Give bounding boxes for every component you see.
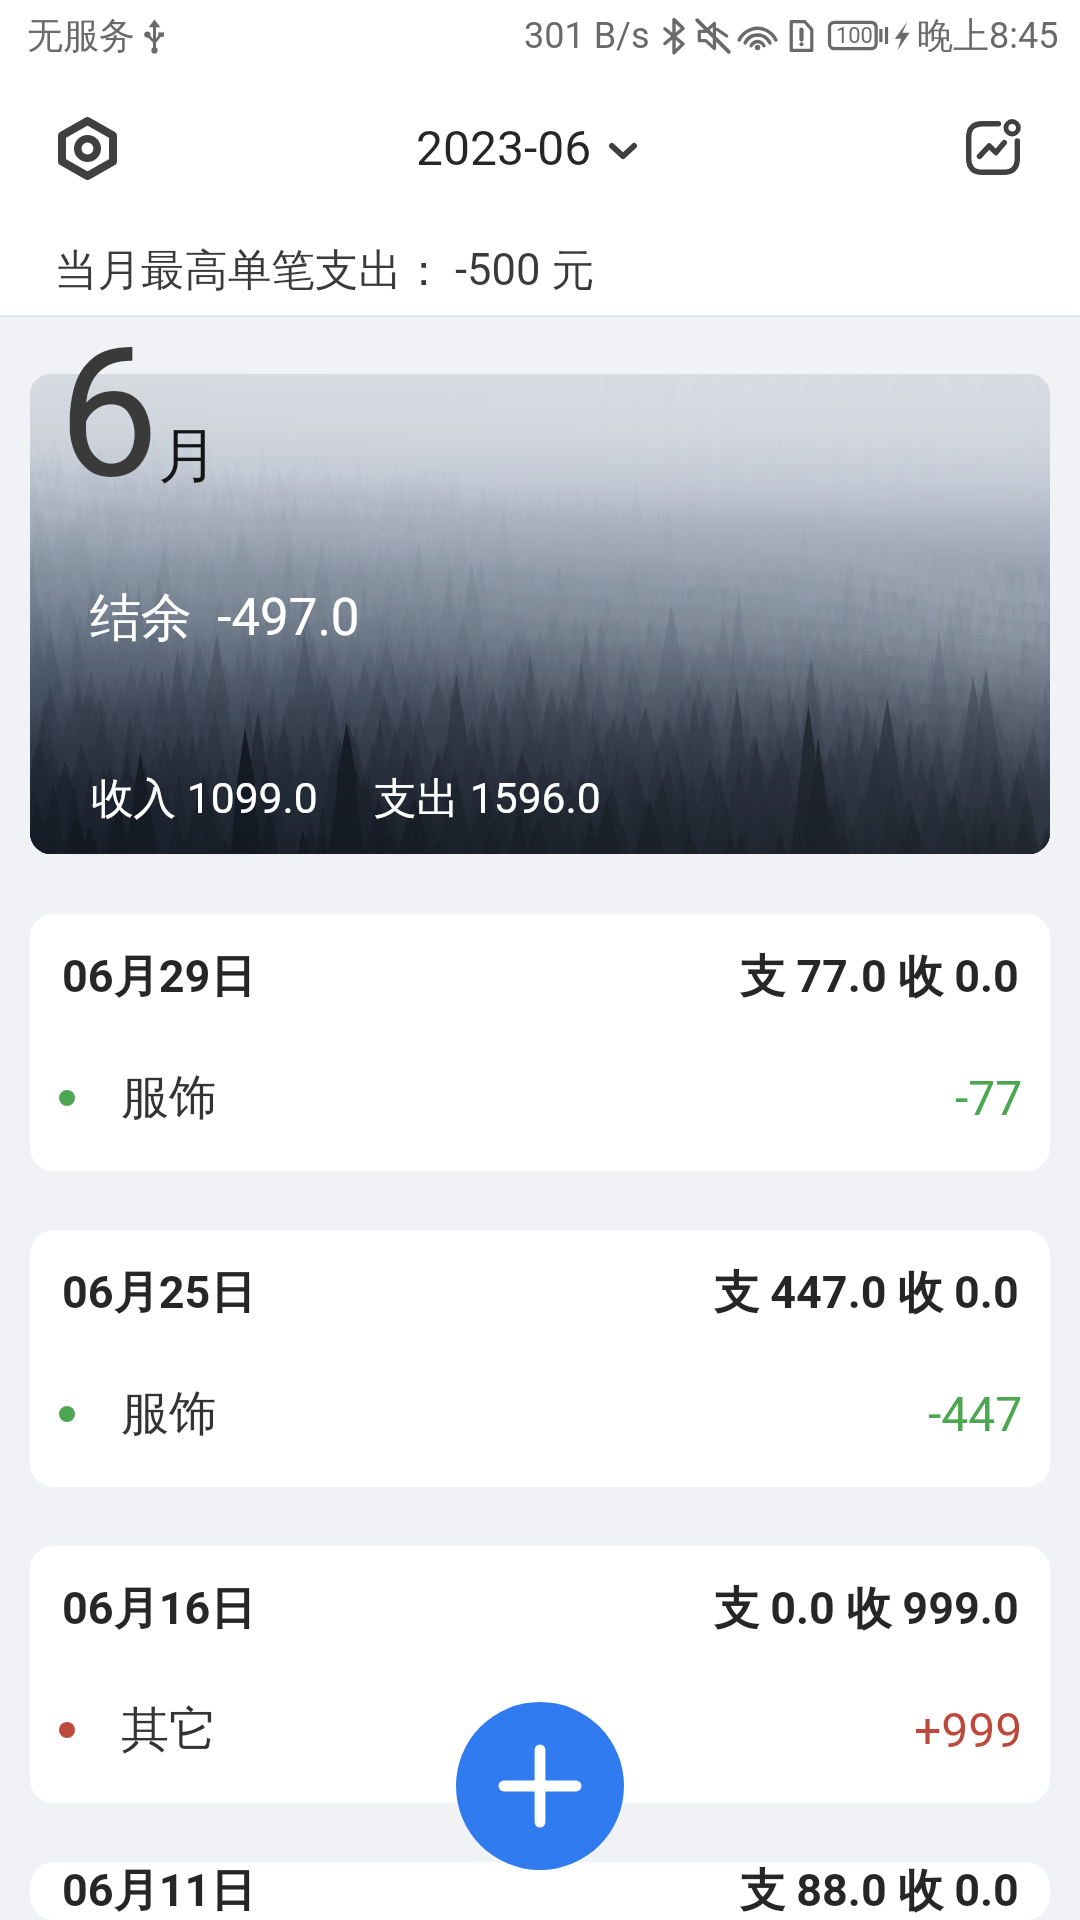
staticText: 支 88.0 收 0.0: [740, 1863, 1019, 1920]
button[interactable]: Add record: [456, 1702, 624, 1870]
staticText: 服饰: [121, 1384, 217, 1444]
staticText: 100: [836, 23, 873, 49]
staticText: 6: [58, 308, 160, 519]
staticText: 当月最高单笔支出：: [54, 243, 446, 298]
button[interactable]: 其它: [59, 1673, 1023, 1786]
staticText: 301 B/s: [524, 15, 650, 57]
button[interactable]: 2023-06: [398, 102, 655, 194]
staticText: -77: [955, 1070, 1023, 1126]
staticText: 晚上8:45: [917, 13, 1059, 58]
button[interactable]: 06月29日: [30, 914, 1050, 1171]
button[interactable]: 06月11日: [30, 1862, 1050, 1920]
staticText: 收入 1099.0: [91, 772, 318, 826]
staticText: 06月16日: [62, 1581, 256, 1638]
staticText: 支 77.0 收 0.0: [740, 949, 1019, 1006]
staticText: 支 0.0 收 999.0: [714, 1581, 1019, 1638]
staticText: 服饰: [121, 1068, 217, 1128]
staticText: 无服务: [27, 13, 135, 58]
button[interactable]: 服饰: [59, 1357, 1023, 1470]
button[interactable]: 服饰: [59, 1041, 1023, 1154]
staticText: +999: [914, 1702, 1023, 1758]
button[interactable]: 结余 -497.0: [30, 374, 1050, 854]
staticText: 其它: [121, 1700, 217, 1760]
staticText: 06月29日: [62, 949, 256, 1006]
staticText: 2023-06: [416, 120, 592, 176]
staticText: 06月25日: [62, 1265, 256, 1322]
staticText: 月: [158, 418, 218, 494]
staticText: -447: [928, 1386, 1023, 1442]
staticText: 06月11日: [62, 1863, 256, 1920]
button[interactable]: 06月25日: [30, 1230, 1050, 1487]
button[interactable]: 06月16日: [30, 1546, 1050, 1803]
staticText: -500 元: [455, 243, 595, 298]
button[interactable]: Settings: [21, 82, 153, 214]
button[interactable]: Statistics: [927, 82, 1059, 214]
staticText: 支出 1596.0: [374, 772, 601, 826]
button[interactable]: 当月最高单笔支出：: [0, 226, 1080, 315]
staticText: 结余 -497.0: [90, 586, 360, 650]
staticText: 支 447.0 收 0.0: [714, 1265, 1019, 1322]
